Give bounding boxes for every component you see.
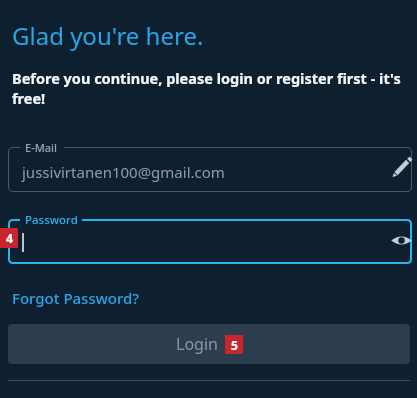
staticText: Password	[25, 212, 78, 228]
button[interactable]: Forgot Password?	[8, 285, 144, 311]
button[interactable]: E-Mail	[8, 147, 412, 192]
staticText: Glad you're here.	[12, 19, 204, 52]
button[interactable]: Password	[8, 219, 412, 264]
staticText: Before you continue, please login or reg…	[12, 68, 410, 109]
staticText: E-Mail	[25, 140, 57, 155]
button[interactable]: Show password	[388, 227, 415, 254]
staticText: 4	[6, 230, 13, 246]
staticText: jussivirtanen100@gmail.com	[22, 162, 225, 182]
staticText: Forgot Password?	[12, 288, 140, 308]
button[interactable]: Login	[8, 324, 410, 364]
button[interactable]: Edit email	[389, 152, 416, 179]
staticText: 5	[231, 337, 238, 353]
staticText: Login	[176, 333, 218, 355]
